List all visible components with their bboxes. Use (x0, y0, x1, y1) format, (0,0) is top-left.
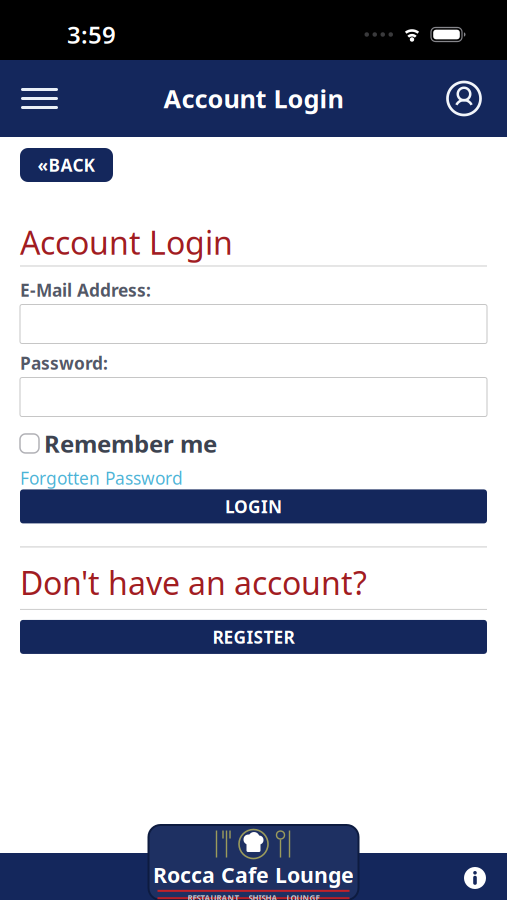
staticText: Password: (20, 351, 108, 374)
button[interactable]: «BACK (20, 148, 113, 182)
button[interactable]: REGISTER (20, 620, 487, 654)
staticText: 3:59 (67, 19, 116, 50)
staticText: Rocca Cafe Lounge (153, 860, 354, 889)
button[interactable]: Info (464, 867, 486, 889)
staticText: Account Login (163, 82, 343, 115)
button[interactable]: Rocca Cafe Lounge (148, 825, 358, 900)
staticText: LOGIN (225, 495, 282, 518)
staticText: «BACK (37, 153, 95, 176)
button[interactable]: LOGIN (20, 489, 487, 523)
button[interactable]: Forgotten Password (20, 466, 183, 489)
button[interactable]: Remember me (20, 427, 217, 459)
staticText: Remember me (44, 427, 217, 459)
button[interactable]: Account (446, 80, 507, 116)
staticText: Account Login (20, 221, 233, 263)
button[interactable]: Menu (0, 88, 58, 109)
staticText: SHISHA (248, 893, 277, 900)
staticText: RESTAURANT (187, 893, 239, 900)
staticText: LOUNGE (286, 893, 319, 900)
staticText: REGISTER (212, 625, 294, 648)
staticText: E-Mail Address: (20, 278, 151, 301)
staticText: Forgotten Password (20, 466, 183, 489)
staticText: Don't have an account? (20, 561, 367, 604)
